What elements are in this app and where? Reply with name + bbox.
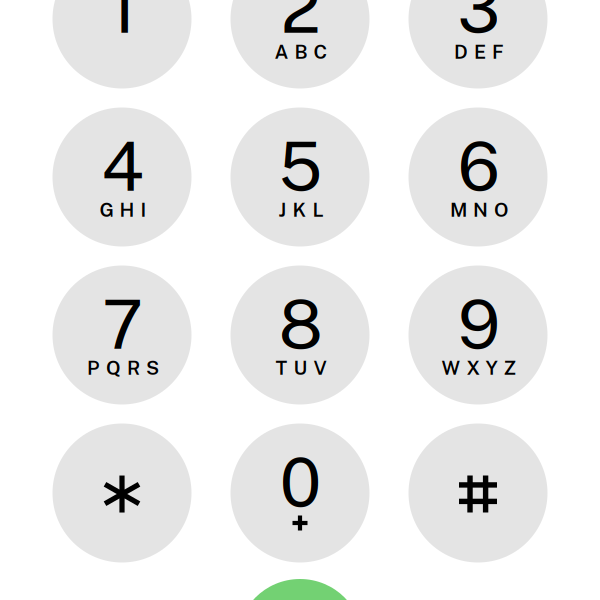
staticText: PQRS	[87, 356, 159, 379]
button[interactable]: 1	[52, 0, 191, 88]
staticText: WXYZ	[441, 356, 516, 379]
button[interactable]: 7	[52, 265, 191, 404]
staticText: 0	[280, 442, 322, 522]
staticText: DEF	[454, 40, 504, 63]
staticText: 6	[458, 126, 500, 206]
staticText: GHI	[99, 198, 146, 221]
staticText: 3	[457, 0, 500, 48]
staticText: 4	[101, 126, 144, 206]
button[interactable]: 5	[230, 107, 369, 246]
button[interactable]: 2	[230, 0, 369, 88]
staticText: 8	[279, 284, 323, 364]
staticText: 9	[458, 284, 500, 364]
staticText: 2	[280, 0, 321, 48]
staticText: JKL	[278, 198, 323, 221]
staticText: MNO	[450, 198, 508, 221]
button[interactable]: 3	[408, 0, 547, 88]
button[interactable]: Call	[237, 579, 363, 600]
button[interactable]: 9	[408, 265, 547, 404]
staticText: ABC	[274, 40, 327, 63]
button[interactable]: 0	[230, 423, 369, 562]
staticText: TUV	[275, 356, 326, 379]
staticText: 7	[102, 284, 143, 364]
button[interactable]: 8	[230, 265, 369, 404]
button[interactable]: Pound	[408, 423, 547, 562]
button[interactable]: 4	[52, 107, 191, 246]
staticText: 5	[279, 126, 323, 206]
staticText: 1	[109, 0, 137, 48]
button[interactable]: 6	[408, 107, 547, 246]
button[interactable]: Star	[52, 423, 191, 562]
